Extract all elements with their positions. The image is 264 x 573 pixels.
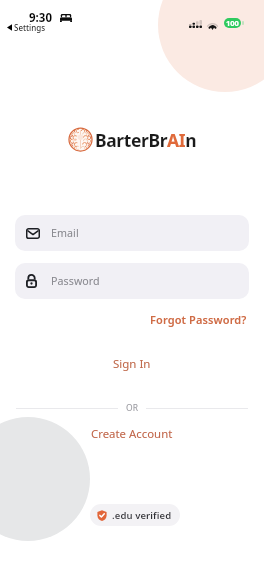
staticText: BarterBrAIn — [95, 128, 197, 152]
button[interactable]: Sign In — [87, 349, 177, 379]
staticText: Forgot Password? — [150, 312, 247, 327]
staticText: Settings — [14, 22, 46, 33]
staticText: 100 — [226, 18, 239, 28]
staticText: Email — [51, 226, 79, 241]
button[interactable]: Forgot Password? — [148, 307, 249, 332]
staticText: Sign In — [113, 356, 151, 372]
button[interactable]: .edu verified — [90, 504, 180, 526]
button[interactable]: Create Account — [73, 419, 191, 449]
staticText: 9:30 — [29, 10, 52, 26]
staticText: OR — [126, 402, 138, 414]
staticText: Password — [51, 274, 100, 289]
button[interactable]: Password — [15, 263, 249, 299]
button[interactable]: Email — [15, 215, 249, 251]
staticText: .edu verified — [112, 509, 172, 522]
staticText: Create Account — [91, 426, 173, 442]
button[interactable]: Back to Settings — [7, 22, 46, 33]
